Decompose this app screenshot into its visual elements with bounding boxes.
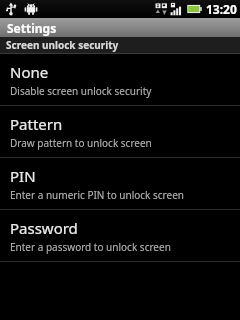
staticText: Password <box>10 218 78 238</box>
other: USB connected <box>3 1 19 17</box>
button[interactable]: PIN <box>0 158 240 210</box>
staticText: Pattern <box>10 114 63 134</box>
staticText: 13:20 <box>206 1 237 17</box>
button[interactable]: Pattern <box>0 106 240 158</box>
button[interactable]: None <box>0 54 240 106</box>
staticText: Screen unlock security <box>6 38 119 52</box>
other: USB debugging <box>23 1 39 17</box>
button[interactable]: Password <box>0 210 240 262</box>
staticText: Enter a numeric PIN to unlock screen <box>10 188 184 202</box>
staticText: Draw pattern to unlock screen <box>10 136 152 150</box>
staticText: Settings <box>7 20 57 36</box>
staticText: PIN <box>10 166 36 186</box>
staticText: None <box>10 62 49 82</box>
staticText: Enter a password to unlock screen <box>10 240 171 254</box>
staticText: Disable screen unlock security <box>10 84 152 98</box>
